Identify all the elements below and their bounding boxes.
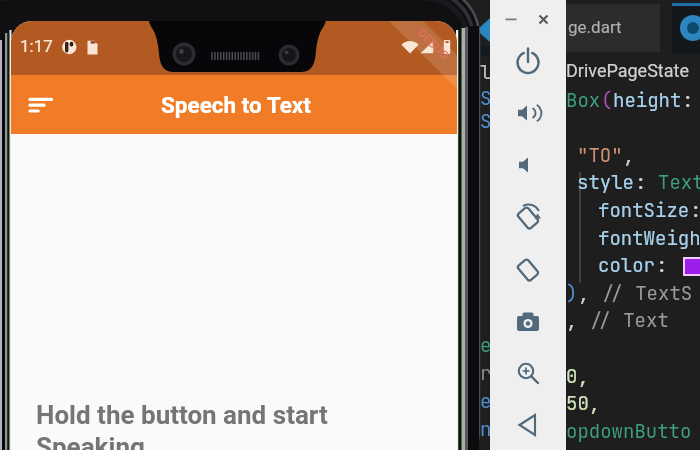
staticText: Box bbox=[566, 88, 601, 113]
staticText: , bbox=[578, 281, 601, 306]
staticText: S bbox=[480, 109, 492, 134]
staticText: 50, bbox=[566, 391, 601, 416]
staticText: DrivePageState bbox=[566, 60, 694, 81]
button[interactable]: Power bbox=[490, 35, 566, 87]
staticText: DEBUG bbox=[415, 26, 452, 63]
button[interactable]: Minimize bbox=[497, 5, 525, 33]
button[interactable]: Rotate left bbox=[490, 191, 566, 243]
staticText: ge.dart bbox=[568, 17, 622, 37]
staticText: // Text bbox=[589, 308, 669, 333]
staticText: fontWeigh bbox=[598, 226, 700, 251]
staticText: 1:17 bbox=[20, 36, 53, 56]
button[interactable]: Screenshot bbox=[490, 295, 566, 347]
staticText: : bbox=[656, 253, 668, 278]
staticText: 0, bbox=[566, 364, 589, 389]
staticText: ) bbox=[566, 281, 578, 306]
staticText: Hold the button and start Speaking bbox=[36, 400, 376, 450]
staticText: n bbox=[480, 417, 492, 442]
staticText: ( bbox=[601, 88, 613, 113]
staticText: , bbox=[623, 143, 635, 168]
staticText: r bbox=[480, 361, 492, 386]
staticText: opdownButton bbox=[566, 419, 700, 450]
staticText: Text bbox=[658, 170, 700, 195]
staticText: "TO" bbox=[577, 143, 623, 168]
staticText: : bbox=[690, 198, 700, 223]
button[interactable]: Close bbox=[529, 5, 557, 33]
staticText: style bbox=[577, 170, 635, 195]
button[interactable]: Volume up bbox=[490, 87, 566, 139]
staticText: : bbox=[635, 170, 658, 195]
staticText: e bbox=[480, 333, 492, 358]
staticText: // TextS bbox=[601, 281, 693, 306]
button[interactable]: Volume down bbox=[490, 139, 566, 191]
staticText: Speech to Text bbox=[161, 92, 311, 118]
staticText: S bbox=[480, 86, 492, 111]
staticText: e bbox=[480, 389, 492, 414]
staticText: : bbox=[682, 88, 694, 113]
staticText: fontSize bbox=[598, 198, 690, 223]
button[interactable]: Menu bbox=[30, 95, 54, 115]
staticText: height bbox=[613, 88, 682, 113]
staticText: color bbox=[598, 253, 656, 278]
staticText: la bbox=[480, 60, 503, 85]
button[interactable]: Rotate right bbox=[490, 243, 566, 295]
button[interactable]: Back bbox=[490, 399, 566, 450]
button[interactable]: Zoom bbox=[490, 347, 566, 399]
staticText: , bbox=[566, 308, 589, 333]
